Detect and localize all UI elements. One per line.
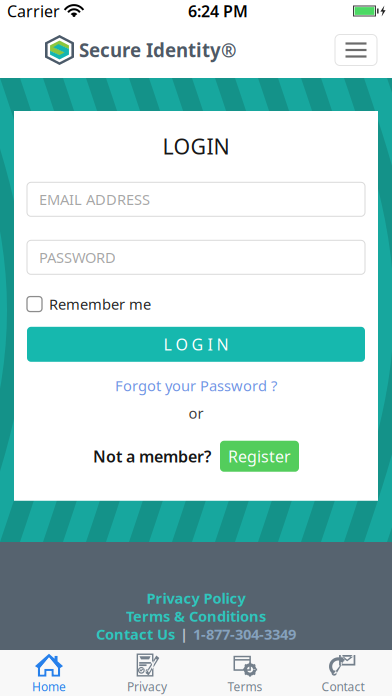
button[interactable]: Home [0,648,98,696]
button[interactable]: Contact Us [96,625,175,643]
staticText: 1-877-304-3349 [193,624,296,644]
staticText: LOGIN [162,132,229,160]
staticText: Privacy Policy [146,588,245,608]
staticText: Carrier [7,0,60,22]
button[interactable]: Menu [335,34,377,65]
staticText: Home [32,678,66,694]
button[interactable]: Terms & Conditions [126,607,266,625]
button[interactable]: Terms [196,648,294,696]
staticText: or [188,403,203,423]
button[interactable]: 1-877-304-3349 [193,625,296,643]
button[interactable]: Contact [294,648,392,696]
staticText: Contact [321,678,364,694]
button[interactable]: Forgot your Password ? [115,376,277,395]
staticText: 6:24 PM [188,0,248,22]
button[interactable]: Privacy [98,648,196,696]
button[interactable]: Register [220,441,299,472]
staticText: Remember me [49,294,151,314]
staticText: Not a member? [93,446,211,467]
staticText: | [180,624,188,644]
button[interactable]: Secure Identity® [45,35,237,65]
button[interactable]: Privacy Policy [146,589,245,607]
staticText: Terms & Conditions [126,606,266,626]
staticText: Terms [227,678,262,694]
staticText: EMAIL ADDRESS [39,190,150,209]
button[interactable]: L O G I N [27,327,365,362]
staticText: Forgot your Password ? [115,376,277,395]
staticText: Contact Us [96,624,175,644]
staticText: Register [228,446,291,467]
staticText: Secure Identity® [79,38,237,62]
staticText: L O G I N [163,334,228,355]
staticText: PASSWORD [39,248,116,267]
staticText: Privacy [127,678,167,694]
